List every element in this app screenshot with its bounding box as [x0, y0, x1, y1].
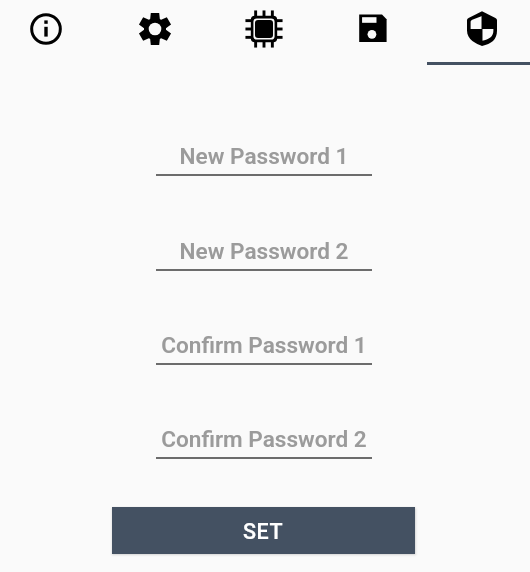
- button[interactable]: Settings: [100, 0, 209, 62]
- button[interactable]: Confirm Password 2: [156, 426, 372, 462]
- staticText: Confirm Password 2: [156, 426, 372, 452]
- staticText: New Password 2: [156, 238, 372, 264]
- button[interactable]: New Password 2: [156, 238, 372, 274]
- staticText: New Password 1: [156, 143, 372, 169]
- button[interactable]: Confirm Password 1: [156, 332, 372, 368]
- button[interactable]: Save: [318, 0, 427, 62]
- button[interactable]: Info: [0, 0, 100, 62]
- button[interactable]: New Password 1: [156, 143, 372, 179]
- button[interactable]: Security: [427, 0, 530, 62]
- staticText: SET: [243, 519, 284, 544]
- staticText: Confirm Password 1: [156, 332, 372, 358]
- button[interactable]: SET: [112, 507, 415, 554]
- button[interactable]: Device: [209, 0, 318, 62]
